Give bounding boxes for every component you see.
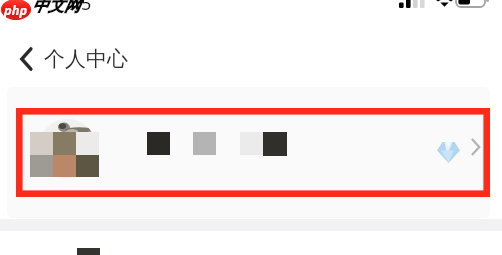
button[interactable]: Back — [12, 45, 40, 73]
button[interactable]: Open member details — [464, 136, 486, 158]
staticText: php — [4, 1, 28, 19]
staticText: 5 — [81, 0, 92, 16]
button[interactable]: Open member details — [7, 87, 490, 218]
staticText: 中文网 — [32, 0, 80, 16]
staticText: 个人中心 — [44, 46, 128, 72]
